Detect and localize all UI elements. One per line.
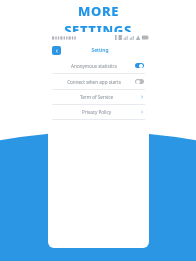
button[interactable]: Term of Service — [48, 90, 149, 104]
staticText: Anonymous statistics — [53, 63, 135, 69]
staticText: Privacy Policy — [53, 109, 140, 115]
button[interactable]: Back — [52, 46, 61, 55]
button[interactable]: Connect when app starts — [48, 74, 149, 89]
staticText: Setting — [91, 47, 109, 54]
button[interactable]: Anonymous statistics — [48, 58, 149, 73]
staticText: SETTINGS — [64, 21, 132, 39]
button[interactable]: Privacy Policy — [48, 105, 149, 119]
staticText: Connect when app starts — [53, 79, 135, 85]
staticText: Term of Service — [53, 94, 140, 100]
staticText: MORE — [78, 2, 119, 20]
